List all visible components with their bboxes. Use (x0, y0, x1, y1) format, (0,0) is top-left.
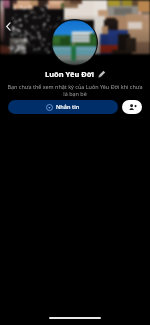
staticText: Bạn chưa thể xem nhật ký của Luôn Yêu Đờ… (0, 83, 150, 90)
staticText: Luôn Yêu Đời (45, 69, 95, 79)
staticText: Nhắn tin (56, 103, 80, 111)
staticText: là bạn bè (0, 90, 150, 97)
button[interactable]: Edit name (98, 70, 106, 78)
button[interactable]: Profile photo (52, 20, 97, 65)
button[interactable]: Add friend (122, 100, 142, 114)
button[interactable]: Nhắn tin (8, 100, 118, 114)
button[interactable]: Back (2, 20, 15, 33)
